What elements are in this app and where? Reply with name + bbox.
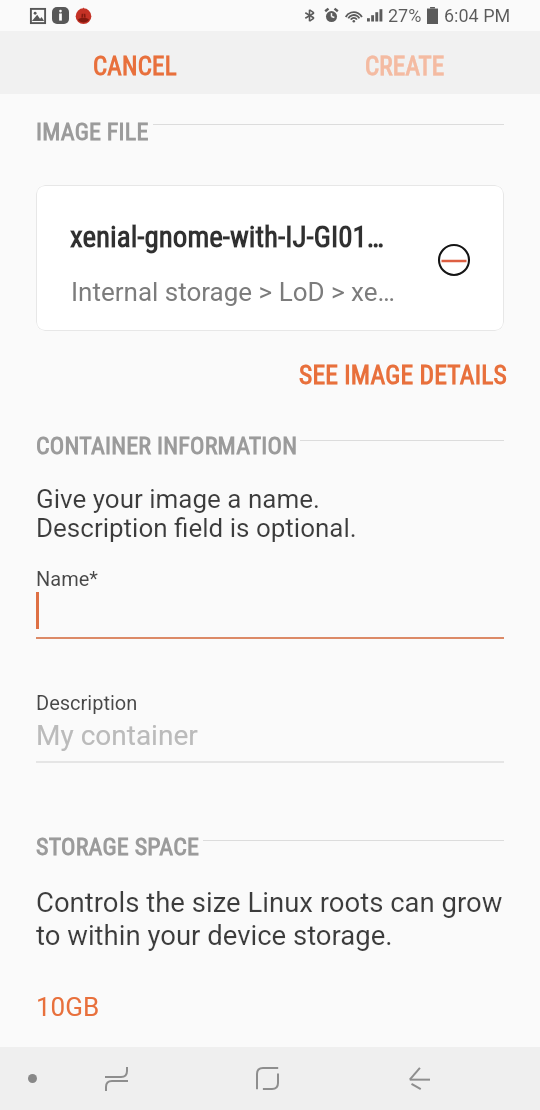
button[interactable]: My container	[36, 719, 504, 763]
staticText: xenial-gnome-with-IJ-GI01…	[70, 220, 384, 254]
button[interactable]: xenial-gnome-with-IJ-GI01…	[36, 185, 504, 331]
button[interactable]: Recent apps	[231, 1047, 303, 1110]
staticText: 6:04 PM	[444, 5, 511, 26]
staticText: 27%	[388, 5, 422, 26]
staticText: Controls the size Linux roots can grow	[36, 886, 503, 918]
staticText: CREATE	[365, 52, 445, 81]
button[interactable]: Back	[383, 1047, 455, 1110]
staticText: to within your device storage.	[36, 919, 393, 951]
staticText: Description field is optional.	[36, 513, 357, 543]
staticText: IMAGE FILE	[36, 118, 149, 146]
button[interactable]: CREATE	[270, 31, 540, 94]
staticText: 10GB	[36, 992, 100, 1022]
staticText: Give your image a name.	[36, 484, 320, 514]
button[interactable]	[36, 590, 504, 640]
staticText: Name*	[36, 567, 98, 590]
staticText: CANCEL	[93, 52, 177, 81]
button[interactable]: Remove image file	[432, 238, 476, 282]
staticText: CONTAINER INFORMATION	[36, 432, 298, 460]
staticText: Internal storage > LoD > xe…	[71, 277, 395, 307]
staticText: SEE IMAGE DETAILS	[299, 360, 508, 390]
staticText: My container	[36, 719, 198, 752]
button[interactable]: Switch keyboard	[80, 1047, 152, 1110]
button[interactable]: SEE IMAGE DETAILS	[299, 360, 508, 390]
button[interactable]: CANCEL	[0, 31, 270, 94]
staticText: STORAGE SPACE	[36, 833, 200, 861]
button[interactable]: Show menu	[8, 1047, 56, 1110]
staticText: Description	[36, 691, 138, 714]
